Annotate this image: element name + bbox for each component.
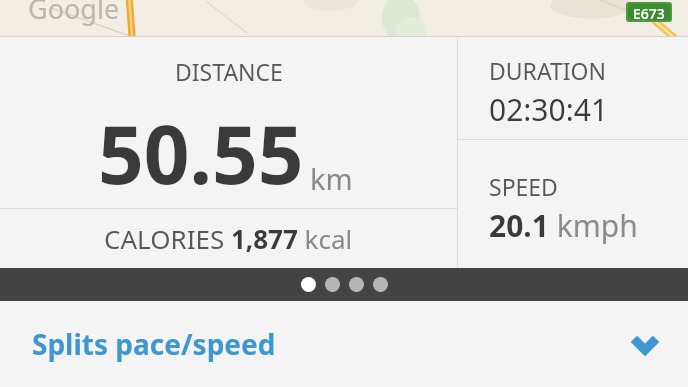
other: Expand splits	[630, 329, 660, 359]
staticText: E673	[633, 4, 665, 20]
staticText: km	[310, 159, 353, 198]
staticText: 20.1 kmph	[489, 205, 638, 246]
staticText: DISTANCE	[175, 56, 283, 87]
staticText: DURATION	[489, 55, 607, 86]
button[interactable]: SPEED	[458, 140, 688, 268]
button[interactable]: Page 1	[301, 277, 316, 292]
staticText: Google	[28, 0, 120, 27]
staticText: SPEED	[489, 171, 558, 202]
button[interactable]: Splits pace/speed	[0, 301, 688, 387]
button[interactable]: Page 3	[349, 277, 364, 292]
button[interactable]: Route map	[0, 0, 688, 37]
button[interactable]: DISTANCE	[0, 37, 457, 268]
staticText: Splits pace/speed	[32, 325, 276, 363]
button[interactable]: DURATION	[458, 37, 688, 139]
staticText: 50.55	[98, 98, 304, 207]
staticText: 02:30:41	[489, 89, 609, 130]
staticText: CALORIES 1,877 kcal	[104, 221, 353, 256]
button[interactable]: Page 4	[373, 277, 388, 292]
button[interactable]: Page 2	[325, 277, 340, 292]
